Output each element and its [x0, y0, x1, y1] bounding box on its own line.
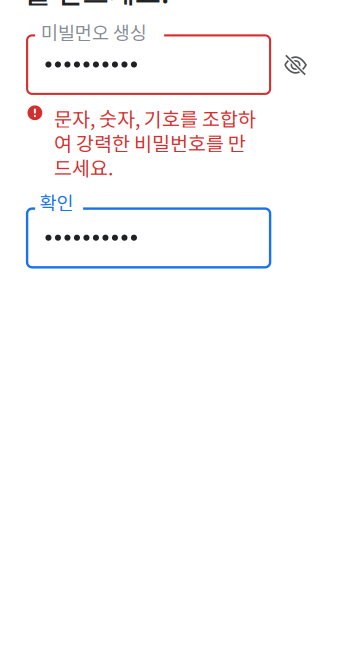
- button[interactable]: Hide password: [276, 45, 315, 84]
- staticText: 미빌먼오 생싱: [41, 18, 147, 45]
- staticText: 를 만드세요.: [25, 0, 169, 11]
- button[interactable]: [27, 35, 270, 94]
- staticText: 확인: [39, 188, 73, 215]
- staticText: 문자, 숫자, 기호를 조합하: [54, 104, 256, 132]
- button[interactable]: [27, 209, 270, 267]
- staticText: 드세요.: [54, 153, 113, 181]
- staticText: 여 강력한 비밀번호를 만: [54, 128, 246, 157]
